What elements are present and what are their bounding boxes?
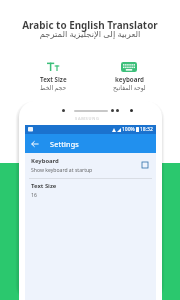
- staticText: 100%: [122, 126, 135, 133]
- button[interactable]: Keyboard: [25, 153, 156, 178]
- staticText: Text Size: [40, 75, 67, 83]
- staticText: العربية إلى الإنجليزية المترجم: [0, 28, 180, 39]
- staticText: SAMSUNG: [75, 116, 100, 121]
- staticText: Text Size: [31, 182, 57, 190]
- staticText: لوحة المفاتيح: [113, 84, 146, 92]
- button[interactable]: Text Size: [25, 179, 156, 204]
- staticText: 16: [31, 192, 37, 199]
- staticText: Keyboard: [31, 157, 59, 165]
- staticText: حجم الخط: [40, 84, 67, 92]
- button[interactable]: keyboard: [102, 61, 156, 92]
- staticText: Settings: [50, 139, 79, 149]
- staticText: Show keyboard at startup: [31, 167, 93, 174]
- staticText: keyboard: [115, 75, 144, 83]
- staticText: 18:32: [140, 126, 153, 133]
- staticText: Arabic to English Translator: [0, 18, 180, 31]
- button[interactable]: Back: [29, 138, 40, 149]
- button[interactable]: Text Size: [26, 61, 80, 92]
